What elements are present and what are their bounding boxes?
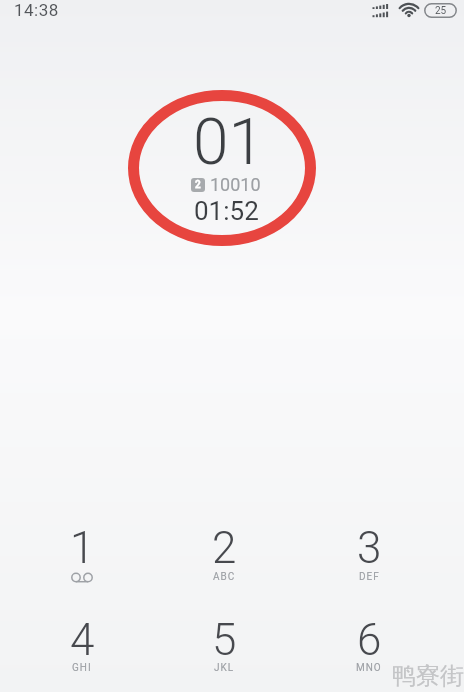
staticText: 14:38	[14, 0, 59, 20]
staticText: 5	[212, 614, 237, 666]
button[interactable]	[159, 609, 289, 689]
staticText: 10010	[210, 174, 261, 195]
staticText: ABC	[213, 571, 236, 583]
button[interactable]	[304, 609, 434, 689]
button[interactable]	[17, 609, 147, 689]
staticText: 4	[70, 614, 95, 666]
staticText: 2	[195, 179, 201, 191]
staticText: 01	[193, 105, 264, 180]
staticText: 6	[357, 614, 382, 666]
staticText: 3	[357, 522, 382, 574]
staticText: 01:52	[194, 196, 259, 226]
staticText: DEF	[359, 571, 380, 583]
staticText: 1	[70, 522, 95, 574]
staticText: 鸭寮街	[392, 661, 464, 691]
staticText: JKL	[214, 662, 235, 674]
staticText: 2	[212, 522, 237, 574]
staticText: GHI	[72, 662, 92, 674]
button[interactable]	[304, 517, 434, 597]
staticText: MNO	[356, 662, 382, 674]
button[interactable]	[159, 517, 289, 597]
staticText: 25	[435, 5, 447, 17]
button[interactable]	[17, 517, 147, 597]
